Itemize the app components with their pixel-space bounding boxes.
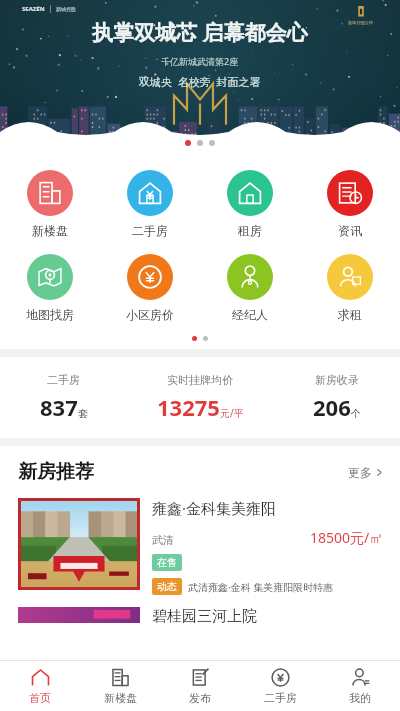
button[interactable]: 实时挂牌均价 bbox=[127, 373, 273, 422]
button[interactable]: 我的 bbox=[320, 661, 400, 711]
staticText: 发布 bbox=[189, 691, 211, 705]
button[interactable]: 碧桂园三河上院 bbox=[0, 605, 400, 626]
staticText: 双城央 名校旁 封面之署 bbox=[139, 74, 261, 89]
staticText: 新房推荐 bbox=[18, 460, 94, 484]
button[interactable]: 求租 bbox=[300, 250, 400, 326]
staticText: 经纪人 bbox=[232, 307, 268, 322]
staticText: 我的 bbox=[349, 691, 371, 705]
staticText: 18500元/㎡ bbox=[310, 528, 384, 547]
staticText: 碧桂园三河上院 bbox=[152, 607, 257, 626]
staticText: 新城·控股公馆 bbox=[348, 20, 374, 25]
staticText: 13275 bbox=[157, 392, 220, 422]
button[interactable]: 二手房 bbox=[0, 373, 127, 422]
staticText: 新城控股 bbox=[56, 6, 76, 12]
button[interactable]: 二手房 bbox=[100, 166, 200, 242]
staticText: 千亿新城武清第2座 bbox=[161, 55, 239, 67]
staticText: 二手房 bbox=[132, 223, 168, 238]
staticText: 二手房 bbox=[47, 373, 80, 387]
button[interactable]: 二手房 bbox=[240, 661, 320, 711]
button[interactable]: 更多 bbox=[348, 465, 384, 480]
staticText: 元/平 bbox=[220, 406, 244, 420]
staticText: 新楼盘 bbox=[32, 223, 68, 238]
staticText: 求租 bbox=[338, 307, 362, 322]
staticText: 个 bbox=[351, 407, 361, 420]
staticText: 套 bbox=[78, 407, 88, 420]
button[interactable]: 小区房价 bbox=[100, 250, 200, 326]
staticText: 新房收录 bbox=[315, 373, 359, 387]
staticText: 执掌双城芯 启幕都会心 bbox=[92, 18, 308, 47]
button[interactable]: 新楼盘 bbox=[0, 166, 100, 242]
staticText: 206 bbox=[313, 392, 351, 422]
staticText: 武清雍鑫·金科 集美雍阳限时特惠 bbox=[188, 580, 334, 594]
button[interactable]: 地图找房 bbox=[0, 250, 100, 326]
staticText: 动态 bbox=[157, 580, 177, 593]
button[interactable]: 资讯 bbox=[300, 166, 400, 242]
staticText: SEAZEN bbox=[22, 5, 45, 13]
button[interactable]: 首页 bbox=[0, 661, 80, 711]
button[interactable]: 租房 bbox=[200, 166, 300, 242]
button[interactable]: 发布 bbox=[160, 661, 240, 711]
button[interactable]: 雍鑫·金科集美雍阳 bbox=[0, 494, 400, 605]
staticText: 资讯 bbox=[338, 223, 362, 238]
button[interactable]: 新楼盘 bbox=[80, 661, 160, 711]
staticText: 武清 bbox=[152, 533, 174, 547]
staticText: 新楼盘 bbox=[104, 691, 137, 705]
staticText: 租房 bbox=[238, 223, 262, 238]
staticText: 更多 bbox=[348, 465, 372, 480]
staticText: 首页 bbox=[29, 691, 51, 705]
button[interactable]: 经纪人 bbox=[200, 250, 300, 326]
staticText: 实时挂牌均价 bbox=[167, 373, 233, 387]
staticText: 地图找房 bbox=[26, 307, 74, 322]
staticText: 837 bbox=[40, 392, 78, 422]
button[interactable]: Promotion banner bbox=[0, 0, 400, 152]
staticText: 二手房 bbox=[264, 691, 297, 705]
staticText: 雍鑫·金科集美雍阳 bbox=[152, 498, 277, 518]
button[interactable]: 新房收录 bbox=[273, 373, 400, 422]
staticText: 小区房价 bbox=[126, 307, 174, 322]
staticText: 在售 bbox=[157, 556, 177, 569]
